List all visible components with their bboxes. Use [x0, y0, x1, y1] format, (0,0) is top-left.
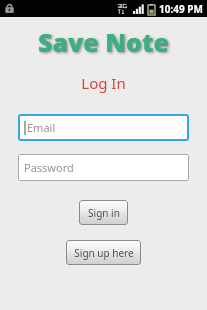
staticText: Email	[27, 120, 56, 135]
staticText: Password	[24, 160, 74, 175]
staticText: 10:49 PM	[159, 2, 203, 16]
button[interactable]: Sign in	[79, 200, 128, 225]
staticText: Sign in	[88, 206, 120, 220]
button[interactable]: Sign up here	[66, 240, 141, 265]
button[interactable]: Password	[18, 154, 189, 181]
button[interactable]: Email	[18, 114, 189, 141]
staticText: Sign up here	[74, 246, 134, 260]
other: Notification	[4, 3, 15, 14]
staticText: Log In	[81, 73, 126, 93]
staticText: Save Note	[38, 25, 169, 59]
